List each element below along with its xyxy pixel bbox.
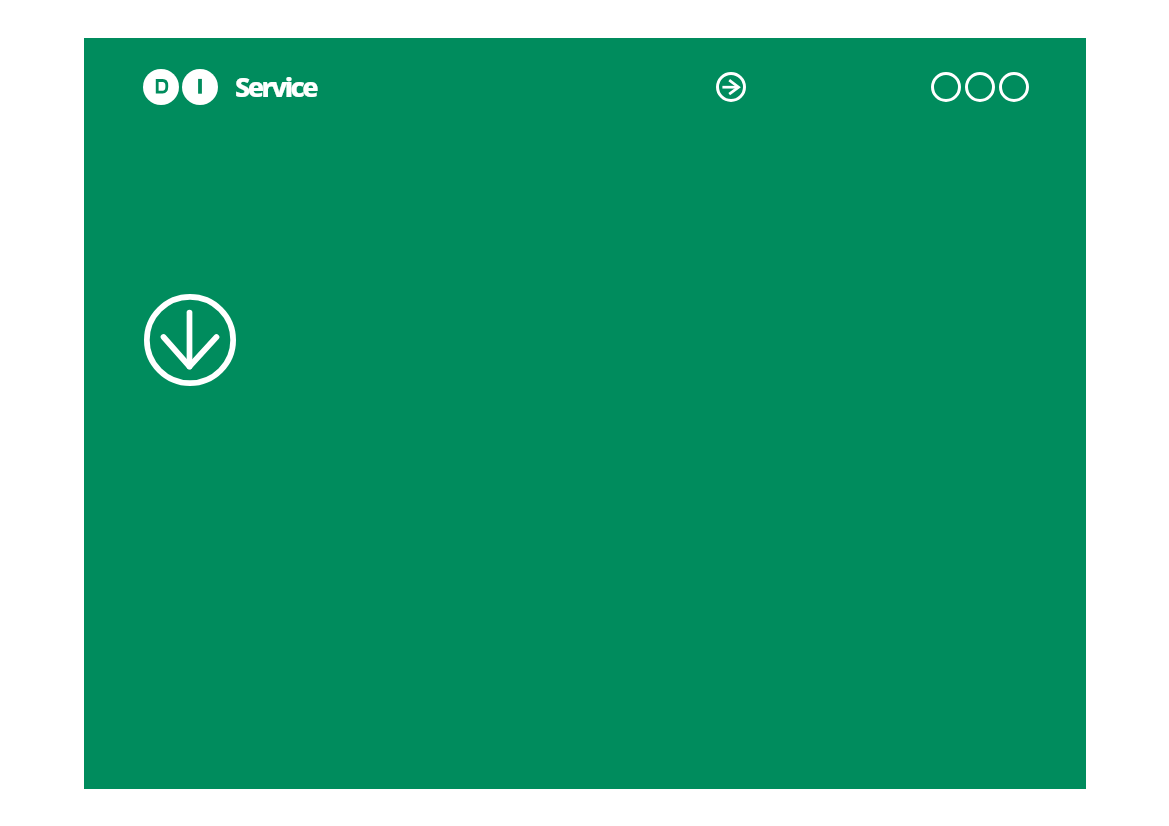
button[interactable]: More options bbox=[931, 72, 1029, 102]
button[interactable]: Service bbox=[143, 68, 316, 105]
staticText: Service bbox=[235, 68, 316, 105]
button[interactable]: Continue bbox=[716, 72, 746, 102]
button[interactable]: Download bbox=[144, 294, 236, 386]
